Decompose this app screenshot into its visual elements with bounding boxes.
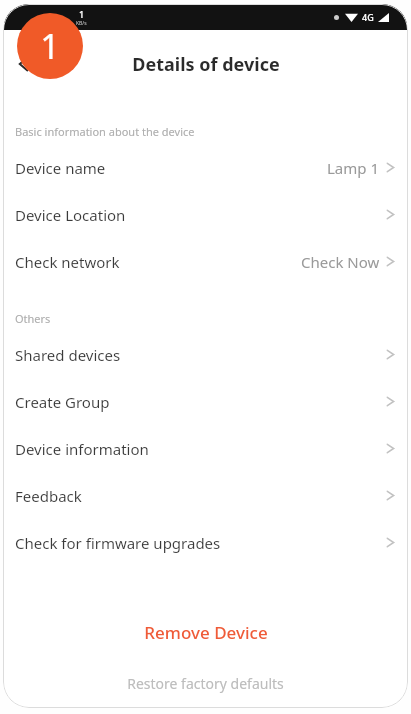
staticText: 1: [79, 8, 85, 20]
button[interactable]: Device information: [3, 425, 408, 472]
staticText: Remove Device: [144, 621, 268, 644]
button[interactable]: Check network: [3, 238, 408, 285]
staticText: Device Location: [15, 205, 126, 225]
button[interactable]: Step 1: [17, 13, 83, 79]
button[interactable]: Device Location: [3, 191, 408, 238]
staticText: 1: [40, 23, 60, 69]
staticText: Shared devices: [15, 345, 121, 365]
staticText: Check Now: [301, 252, 380, 272]
button[interactable]: Remove Device: [3, 614, 408, 650]
staticText: KB/s: [76, 20, 87, 27]
button[interactable]: Shared devices: [3, 331, 408, 378]
staticText: Lamp 1: [327, 158, 380, 178]
staticText: Restore factory defaults: [127, 674, 284, 693]
staticText: Details of device: [132, 52, 280, 77]
staticText: Others: [15, 311, 51, 326]
button[interactable]: Back: [3, 42, 47, 86]
button[interactable]: Check for firmware upgrades: [3, 519, 408, 566]
button[interactable]: Restore factory defaults: [3, 668, 408, 698]
staticText: 4G: [362, 11, 374, 23]
staticText: Feedback: [15, 486, 82, 506]
staticText: Basic information about the device: [15, 124, 195, 139]
button[interactable]: Feedback: [3, 472, 408, 519]
button[interactable]: Device name: [3, 144, 408, 191]
staticText: Check for firmware upgrades: [15, 533, 221, 553]
staticText: Device information: [15, 439, 149, 459]
staticText: Device name: [15, 158, 106, 178]
staticText: Create Group: [15, 392, 110, 412]
staticText: Check network: [15, 252, 120, 272]
button[interactable]: Create Group: [3, 378, 408, 425]
